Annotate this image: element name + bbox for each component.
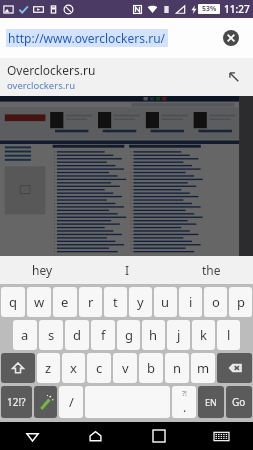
staticText: hey — [32, 262, 53, 278]
button[interactable]: EN — [198, 386, 224, 418]
staticText: k — [200, 326, 207, 344]
button[interactable]: a — [13, 320, 37, 350]
button[interactable]: q — [1, 287, 25, 317]
button[interactable]: k — [192, 320, 215, 350]
button[interactable]: p — [229, 287, 252, 317]
button[interactable]: m — [191, 353, 215, 383]
button[interactable]: c — [87, 353, 111, 383]
staticText: . — [183, 399, 187, 415]
staticText: c — [96, 359, 103, 377]
staticText: 53% — [202, 4, 217, 14]
button[interactable]: x — [62, 353, 85, 383]
staticText: overclockers.ru — [7, 79, 76, 92]
staticText: / — [69, 393, 74, 411]
button[interactable]: Emoji / tools — [34, 386, 57, 418]
staticText: h — [149, 326, 158, 344]
staticText: o — [212, 293, 220, 311]
staticText: z — [45, 359, 52, 377]
staticText: ?! — [182, 389, 187, 399]
staticText: e — [61, 293, 69, 311]
button[interactable]: w — [27, 287, 51, 317]
staticText: x — [70, 359, 77, 377]
staticText: 12!? — [7, 395, 26, 409]
staticText: http://www.overclockers.ru/ — [8, 30, 166, 46]
button[interactable]: g — [117, 320, 140, 350]
button[interactable]: l — [217, 320, 240, 350]
button[interactable]: d — [65, 320, 89, 350]
staticText: EN — [205, 396, 217, 408]
button[interactable]: Clear — [217, 24, 245, 52]
staticText: t — [113, 293, 118, 311]
button[interactable]: h — [142, 320, 165, 350]
staticText: d — [73, 326, 81, 344]
button[interactable]: hey — [0, 256, 85, 284]
staticText: l — [227, 326, 231, 344]
button[interactable]: Insert suggestion — [222, 65, 246, 89]
button[interactable]: r — [79, 287, 102, 317]
button[interactable]: http://www.overclockers.ru/ — [8, 30, 166, 46]
button[interactable]: v — [113, 353, 137, 383]
staticText: 11:27 — [224, 2, 250, 16]
staticText: m — [197, 359, 210, 377]
button[interactable]: Back — [0, 422, 64, 450]
button[interactable]: Home — [64, 422, 127, 450]
staticText: y — [137, 293, 144, 311]
button[interactable]: f — [91, 320, 115, 350]
staticText: q — [9, 293, 17, 311]
button[interactable]: t — [104, 287, 127, 317]
staticText: p — [237, 293, 245, 311]
staticText: i — [189, 293, 193, 311]
button[interactable]: the — [169, 256, 253, 284]
button[interactable]: o — [204, 287, 227, 317]
button[interactable]: u — [154, 287, 177, 317]
staticText: I — [125, 262, 130, 278]
staticText: u — [161, 293, 170, 311]
staticText: the — [202, 262, 221, 278]
staticText: n — [173, 359, 182, 377]
button[interactable]: n — [165, 353, 189, 383]
button[interactable]: Backspace — [217, 353, 252, 383]
staticText: f — [101, 326, 106, 344]
button[interactable]: Recents — [127, 422, 190, 450]
staticText: a — [21, 326, 29, 344]
button[interactable]: e — [53, 287, 77, 317]
staticText: v — [122, 359, 129, 377]
button[interactable]: I — [85, 256, 169, 284]
staticText: w — [34, 293, 45, 311]
button[interactable]: Overclockers.ru — [0, 58, 253, 96]
button[interactable]: 12!? — [1, 386, 32, 418]
button[interactable]: Shift — [1, 353, 35, 383]
staticText: j — [177, 326, 181, 344]
staticText: g — [125, 326, 133, 344]
staticText: b — [147, 359, 155, 377]
button[interactable]: i — [179, 287, 202, 317]
staticText: Go — [232, 395, 246, 409]
button[interactable]: Go — [226, 386, 252, 418]
button[interactable]: ?! — [172, 386, 196, 418]
button[interactable]: y — [129, 287, 152, 317]
button[interactable]: / — [59, 386, 83, 418]
button[interactable]: s — [39, 320, 63, 350]
staticText: Overclockers.ru — [7, 62, 96, 78]
button[interactable]: z — [37, 353, 60, 383]
button[interactable]: j — [167, 320, 190, 350]
staticText: r — [88, 293, 94, 311]
button[interactable]: Hide keyboard — [190, 422, 253, 450]
button[interactable]: b — [139, 353, 163, 383]
staticText: s — [48, 326, 55, 344]
